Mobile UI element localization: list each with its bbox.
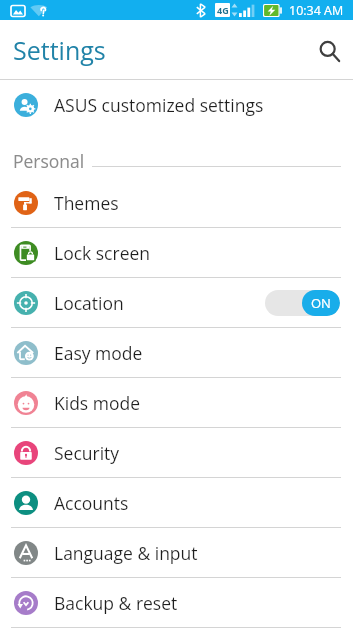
button[interactable]: Backup & reset [0, 578, 353, 627]
staticText: Accounts [54, 491, 129, 515]
button[interactable]: ON [265, 290, 340, 316]
button[interactable]: Easy mode [0, 328, 353, 377]
staticText: Backup & reset [54, 591, 178, 615]
staticText: Kids mode [54, 391, 140, 415]
button[interactable]: Language & input [0, 528, 353, 577]
button[interactable]: Search [306, 27, 352, 73]
button[interactable]: ASUS customized settings [0, 80, 353, 130]
staticText: Easy mode [54, 341, 143, 365]
button[interactable]: Lock screen [0, 228, 353, 277]
staticText: Security [54, 441, 120, 465]
staticText: Personal [13, 149, 85, 173]
button[interactable]: Location [0, 278, 353, 327]
staticText: ON [311, 294, 331, 312]
staticText: ASUS customized settings [54, 93, 264, 117]
staticText: Settings [13, 33, 106, 67]
staticText: 10:34 AM [289, 2, 344, 19]
staticText: 4G [217, 4, 229, 16]
button[interactable]: Kids mode [0, 378, 353, 427]
staticText: Lock screen [54, 241, 151, 265]
button[interactable]: Security [0, 428, 353, 477]
button[interactable]: Themes [0, 178, 353, 227]
button[interactable]: Accounts [0, 478, 353, 527]
staticText: Location [54, 291, 124, 315]
staticText: Language & input [54, 541, 198, 565]
staticText: Themes [54, 191, 119, 215]
